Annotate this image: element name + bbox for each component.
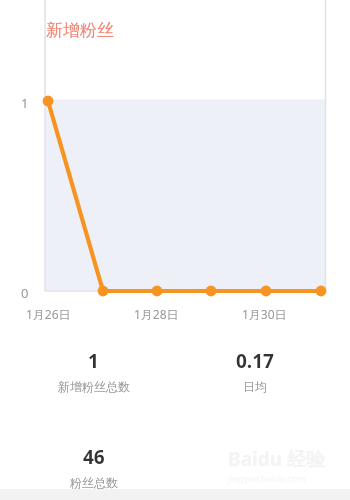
staticText: 1月26日 <box>26 306 71 322</box>
staticText: 1月30日 <box>242 306 287 322</box>
staticText: 日均 <box>243 379 267 394</box>
staticText: 1 <box>21 94 29 112</box>
staticText: 新增粉丝总数 <box>58 379 130 394</box>
staticText: 0 <box>21 284 29 302</box>
button[interactable]: 46 <box>0 444 187 490</box>
staticText: jingyan.baidu.com <box>228 472 306 484</box>
staticText: 1 <box>88 348 99 374</box>
button[interactable]: 1 <box>0 348 187 394</box>
button[interactable]: 0.17 <box>187 348 322 394</box>
staticText: 新增粉丝 <box>46 20 114 41</box>
staticText: Baidu 经验 <box>228 446 325 472</box>
staticText: 0.17 <box>236 348 274 374</box>
staticText: 1月28日 <box>134 306 179 322</box>
staticText: 粉丝总数 <box>70 475 118 490</box>
staticText: 46 <box>83 444 105 470</box>
